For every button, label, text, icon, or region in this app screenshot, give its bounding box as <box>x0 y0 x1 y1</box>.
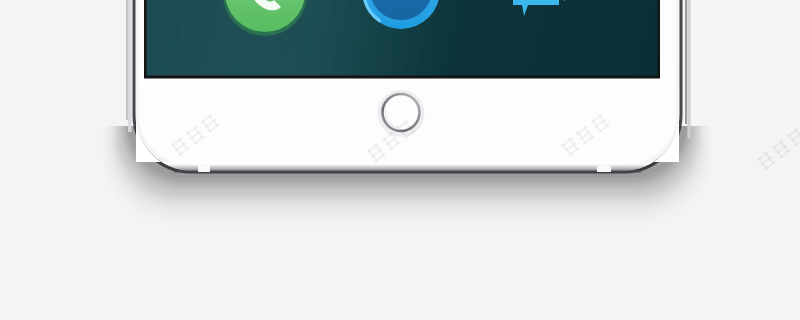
button[interactable]: Phone <box>232 0 298 48</box>
button[interactable]: Messages <box>504 0 576 48</box>
button[interactable]: Browser <box>368 0 434 48</box>
button[interactable]: Home <box>380 91 422 133</box>
